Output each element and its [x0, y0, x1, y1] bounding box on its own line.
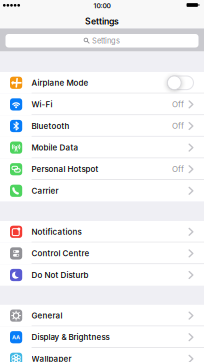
staticText: Notifications — [32, 227, 82, 237]
staticText: Wallpaper — [32, 354, 72, 362]
staticText: Settings — [92, 36, 120, 45]
staticText: Off — [172, 100, 184, 109]
staticText: Off — [172, 121, 184, 131]
button[interactable]: Search Settings — [5, 34, 198, 47]
staticText: Carrier — [32, 186, 59, 196]
button[interactable]: Mobile Data — [0, 137, 204, 158]
staticText: Do Not Disturb — [32, 270, 89, 280]
staticText: Personal Hotspot — [32, 164, 99, 174]
staticText: Off — [172, 164, 184, 174]
staticText: 10:00 — [93, 2, 110, 10]
button[interactable]: Notifications — [0, 221, 204, 243]
staticText: General — [32, 311, 63, 320]
button[interactable]: Personal Hotspot — [0, 158, 204, 180]
staticText: Airplane Mode — [32, 78, 89, 88]
staticText: AA — [12, 334, 20, 340]
button[interactable]: Wi-Fi — [0, 94, 204, 115]
button[interactable]: Carrier — [0, 180, 204, 202]
staticText: Wi-Fi — [32, 100, 53, 109]
button[interactable]: General — [0, 305, 204, 326]
staticText: Bluetooth — [32, 121, 70, 131]
staticText: Mobile Data — [32, 143, 79, 152]
staticText: Display & Brightness — [32, 332, 110, 342]
button[interactable]: Do Not Disturb — [0, 264, 204, 286]
button[interactable]: AA — [0, 326, 204, 348]
button[interactable]: Airplane Mode — [167, 76, 193, 90]
button[interactable]: Bluetooth — [0, 115, 204, 137]
staticText: Control Centre — [32, 249, 90, 258]
button[interactable]: Control Centre — [0, 243, 204, 264]
button[interactable]: Wallpaper — [0, 348, 204, 362]
staticText: Settings — [85, 16, 119, 27]
